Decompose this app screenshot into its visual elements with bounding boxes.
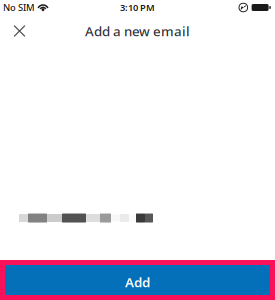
button[interactable]: Close — [5, 19, 34, 43]
staticText: Add a new email — [85, 22, 190, 40]
staticText: Add — [125, 273, 150, 291]
button[interactable]: Add — [5, 265, 270, 295]
staticText: No SIM — [3, 1, 35, 14]
staticText: 3:10 PM — [120, 1, 155, 14]
